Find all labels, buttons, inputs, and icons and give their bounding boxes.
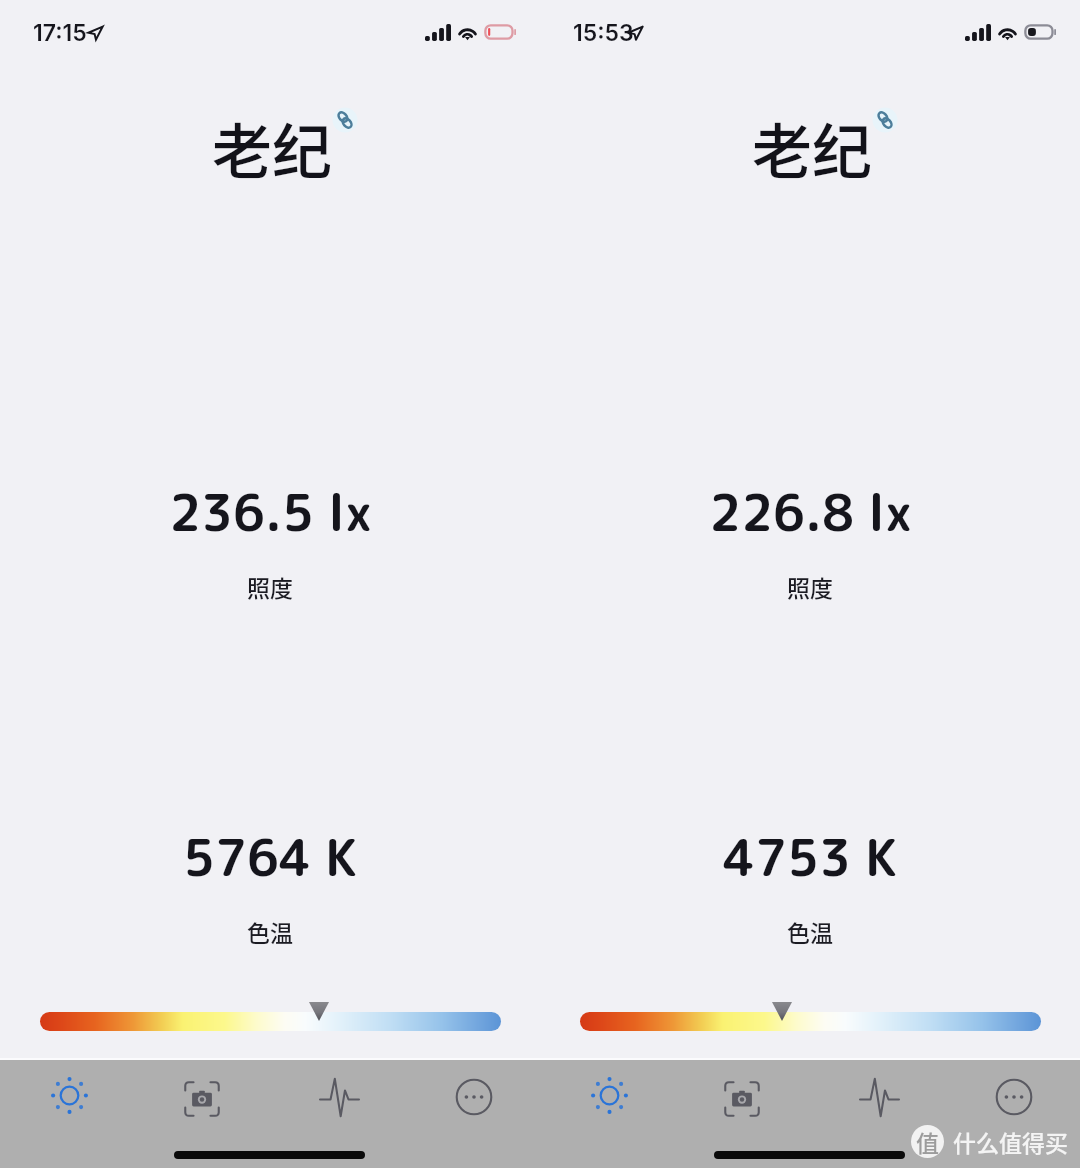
button[interactable]: Brightness (555, 1061, 663, 1129)
button[interactable]: Camera (688, 1065, 796, 1133)
staticText: 5764 K (183, 822, 357, 892)
staticText: 什么值得买 (953, 1125, 1068, 1158)
button[interactable]: Brightness (15, 1061, 123, 1129)
staticText: 值 (916, 1125, 939, 1158)
staticText: 4753 K (723, 822, 897, 892)
staticText: 17:15 (33, 19, 87, 47)
button[interactable]: More (960, 1063, 1068, 1131)
staticText: 老纪 (752, 104, 872, 191)
staticText: 老纪 (212, 104, 332, 191)
staticText: 色温 (787, 915, 833, 948)
button[interactable]: Waveform (825, 1063, 933, 1131)
staticText: 15:53 (573, 19, 634, 47)
staticText: 226.8 lx (709, 477, 912, 547)
button[interactable]: More (420, 1063, 528, 1131)
staticText: 236.5 lx (169, 477, 372, 547)
staticText: 照度 (247, 570, 293, 603)
button[interactable]: Camera (148, 1065, 256, 1133)
staticText: 色温 (247, 915, 293, 948)
staticText: 照度 (787, 570, 833, 603)
button[interactable]: Waveform (285, 1063, 393, 1131)
